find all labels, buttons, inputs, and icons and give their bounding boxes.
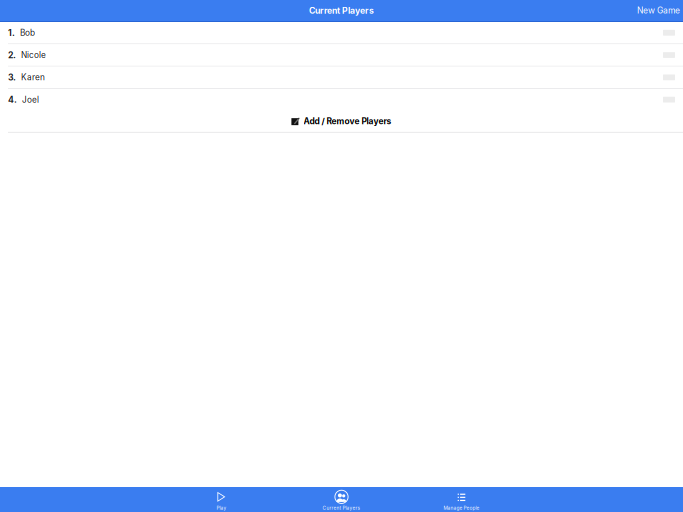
button[interactable]: 2.	[0, 44, 683, 66]
button[interactable]: Manage People	[401, 487, 521, 512]
staticText: Current Players	[309, 5, 374, 16]
staticText: 2.	[8, 50, 16, 60]
staticText: 3.	[8, 72, 16, 83]
staticText: Add / Remove Players	[304, 116, 392, 126]
staticText: New Game	[637, 5, 680, 16]
staticText: Current Players	[322, 505, 360, 511]
button[interactable]: 1.	[0, 22, 683, 43]
button[interactable]: Add / Remove Players	[0, 110, 683, 132]
button[interactable]: Current Players	[281, 487, 401, 512]
staticText: 4.	[8, 94, 17, 105]
staticText: Bob	[20, 28, 35, 38]
button[interactable]: Play	[161, 487, 281, 512]
button[interactable]: 4.	[0, 89, 683, 110]
button[interactable]: New Game	[637, 5, 683, 16]
staticText: Play	[216, 505, 226, 511]
button[interactable]: 3.	[0, 67, 683, 88]
staticText: Joel	[22, 95, 39, 105]
staticText: Nicole	[21, 50, 46, 60]
staticText: Manage People	[443, 505, 479, 511]
staticText: 1.	[8, 27, 15, 38]
staticText: Karen	[21, 72, 45, 82]
